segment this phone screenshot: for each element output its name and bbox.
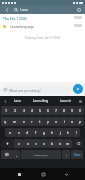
staticText: k: [67, 130, 69, 135]
button[interactable]: l: [72, 128, 80, 137]
button[interactable]: y: [44, 117, 52, 126]
staticText: t: [39, 119, 41, 124]
staticText: b: [51, 141, 54, 146]
staticText: Laun: [14, 99, 22, 103]
staticText: What are you doing?: [9, 88, 41, 92]
button[interactable]: v: [40, 139, 48, 148]
button[interactable]: i: [60, 117, 68, 126]
button[interactable]: 0: [76, 106, 84, 115]
button[interactable]: z: [14, 139, 23, 148]
staticText: English (US): [34, 153, 48, 156]
button[interactable]: u: [52, 117, 60, 126]
staticText: z: [18, 141, 20, 146]
button[interactable]: t: [36, 117, 44, 126]
staticText: Launching: [33, 99, 49, 103]
staticText: d: [26, 130, 29, 135]
staticText: 2: [14, 108, 16, 113]
button[interactable]: d: [23, 128, 32, 137]
staticText: h: [51, 130, 54, 135]
button[interactable]: f: [32, 128, 40, 137]
staticText: ,: [16, 153, 17, 157]
button[interactable]: 5: [36, 106, 44, 115]
staticText: 8: [63, 108, 65, 113]
staticText: m: [66, 141, 70, 146]
button[interactable]: a: [5, 128, 14, 137]
staticText: .: [66, 153, 67, 157]
staticText: g: [43, 130, 46, 135]
staticText: s: [18, 130, 20, 135]
staticText: i: [64, 119, 65, 124]
button[interactable]: English (US): [21, 150, 61, 159]
staticText: 9: [71, 108, 73, 113]
button[interactable]: e: [19, 117, 28, 126]
button[interactable]: Send: [73, 84, 83, 94]
button[interactable]: s: [14, 128, 23, 137]
staticText: p: [79, 119, 82, 124]
button[interactable]: Launching app: [0, 21, 85, 31]
staticText: c: [35, 141, 37, 146]
staticText: f: [35, 130, 37, 135]
button[interactable]: !#1: [1, 150, 12, 159]
button[interactable]: q: [1, 117, 10, 126]
staticText: l: [76, 130, 77, 135]
button[interactable]: m: [64, 139, 72, 148]
staticText: 0: [79, 108, 81, 113]
button[interactable]: n: [56, 139, 64, 148]
button[interactable]: Settings: [75, 6, 82, 13]
button[interactable]: What are you doing?: [2, 85, 71, 94]
button[interactable]: 9: [68, 106, 76, 115]
button[interactable]: b: [48, 139, 56, 148]
staticText: a: [9, 130, 11, 135]
button[interactable]: o: [68, 117, 76, 126]
staticText: Launching app: [10, 24, 34, 29]
staticText: n: [59, 141, 62, 146]
staticText: 00:00: [74, 16, 82, 20]
button[interactable]: x: [23, 139, 32, 148]
button[interactable]: .: [62, 150, 70, 159]
button[interactable]: p: [76, 117, 84, 126]
staticText: u: [55, 119, 58, 124]
button[interactable]: 2: [10, 106, 19, 115]
button[interactable]: 1: [1, 106, 10, 115]
button[interactable]: Home: [39, 170, 47, 178]
button[interactable]: g: [40, 128, 48, 137]
staticText: x: [27, 141, 29, 146]
button[interactable]: 4: [28, 106, 36, 115]
button[interactable]: w: [10, 117, 19, 126]
button[interactable]: Launch: [59, 98, 72, 104]
button[interactable]: Laun: [13, 98, 23, 104]
staticText: Posting from Jan 3 2024: [0, 36, 85, 40]
button[interactable]: Previous: [2, 98, 8, 104]
button[interactable]: k: [64, 128, 72, 137]
button[interactable]: Back: [3, 6, 10, 13]
button[interactable]: Shift: [1, 139, 14, 148]
button[interactable]: More: [77, 98, 83, 104]
button[interactable]: 6: [44, 106, 52, 115]
button[interactable]: Search: [12, 6, 19, 13]
button[interactable]: r: [28, 117, 36, 126]
button[interactable]: 8: [60, 106, 68, 115]
staticText: Done: [74, 153, 81, 157]
button[interactable]: Launching: [32, 98, 50, 104]
staticText: 00:00: [74, 24, 82, 28]
button[interactable]: Backspace: [72, 139, 84, 148]
staticText: 1: [5, 108, 7, 113]
staticText: Launch: [60, 99, 71, 103]
button[interactable]: 3: [19, 106, 28, 115]
staticText: 6: [47, 108, 49, 113]
staticText: y: [47, 119, 49, 124]
button[interactable]: 7: [52, 106, 60, 115]
staticText: Thu Feb 1 2024: [3, 16, 27, 20]
staticText: e: [23, 119, 25, 124]
button[interactable]: Recents: [15, 170, 23, 178]
staticText: o: [71, 119, 74, 124]
button[interactable]: j: [56, 128, 64, 137]
staticText: v: [43, 141, 45, 146]
staticText: Laun: [20, 7, 29, 12]
button[interactable]: Done: [71, 150, 83, 159]
button[interactable]: c: [32, 139, 40, 148]
button[interactable]: h: [48, 128, 56, 137]
button[interactable]: ,: [12, 150, 20, 159]
staticText: r: [31, 119, 33, 124]
button[interactable]: Back: [62, 170, 70, 178]
